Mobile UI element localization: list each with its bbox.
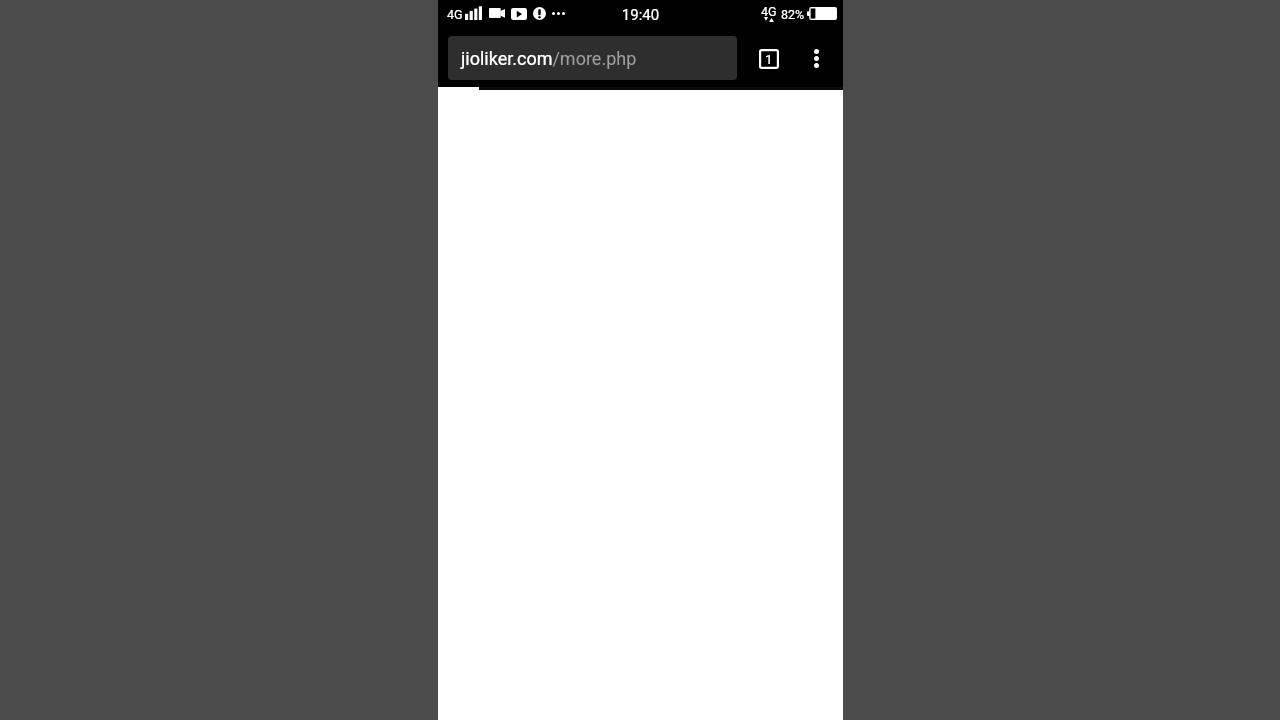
staticText: 1: [765, 51, 773, 67]
staticText: jioliker.com/more.php: [461, 48, 637, 69]
staticText: 4G: [447, 7, 463, 22]
button[interactable]: jioliker.com/more.php: [448, 36, 737, 80]
staticText: 82%: [781, 7, 805, 22]
button[interactable]: Switch or close tabs: [748, 38, 789, 79]
staticText: 4G: [761, 4, 777, 19]
button[interactable]: Customize and control Chrome: [796, 38, 837, 79]
staticText: 19:40: [438, 6, 843, 24]
